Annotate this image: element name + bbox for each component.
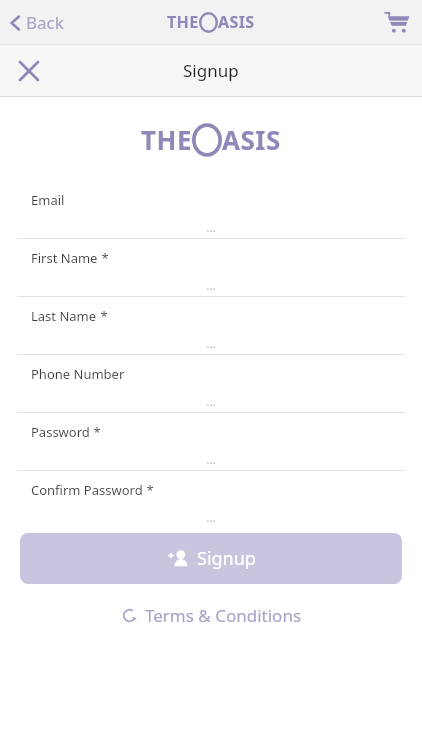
- button[interactable]: Email: [0, 181, 422, 239]
- staticText: Phone Number: [31, 365, 125, 383]
- button[interactable]: Phone Number: [0, 355, 422, 413]
- button[interactable]: Signup: [20, 533, 402, 584]
- staticText: Last Name: [31, 307, 97, 325]
- button[interactable]: Close: [0, 62, 58, 80]
- staticText: *: [90, 423, 101, 441]
- staticText: ASIS: [218, 11, 255, 33]
- button[interactable]: Cart: [372, 10, 422, 34]
- button[interactable]: First Name: [0, 239, 422, 297]
- staticText: *: [97, 307, 108, 325]
- staticText: Back: [26, 11, 64, 34]
- button[interactable]: Last Name: [0, 297, 422, 355]
- staticText: Email: [31, 191, 65, 209]
- staticText: Terms & Conditions: [145, 604, 302, 627]
- staticText: Signup: [197, 546, 256, 571]
- button[interactable]: Password: [0, 413, 422, 471]
- staticText: Confirm Password: [31, 481, 143, 499]
- button[interactable]: Back: [0, 5, 72, 40]
- button[interactable]: Confirm Password: [0, 471, 422, 529]
- staticText: *: [143, 481, 154, 499]
- staticText: First Name: [31, 249, 98, 267]
- staticText: THE: [167, 11, 199, 33]
- staticText: THE: [141, 122, 192, 157]
- staticText: Signup: [183, 59, 239, 82]
- staticText: *: [98, 249, 109, 267]
- staticText: Password: [31, 423, 90, 441]
- staticText: ASIS: [222, 122, 281, 157]
- button[interactable]: Terms & Conditions: [111, 600, 312, 631]
